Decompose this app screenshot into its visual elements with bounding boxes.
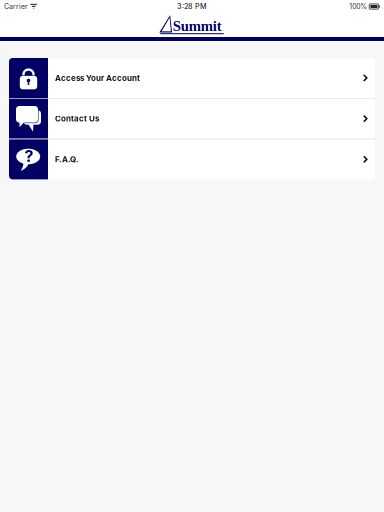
- staticText: Contact Us: [55, 114, 99, 124]
- staticText: F.A.Q.: [55, 155, 79, 164]
- staticText: Carrier: [4, 2, 28, 11]
- button[interactable]: Contact Us: [9, 99, 375, 139]
- staticText: 100%: [349, 2, 367, 11]
- staticText: ?: [24, 147, 33, 166]
- staticText: 3:28 PM: [177, 2, 207, 11]
- button[interactable]: ?: [9, 139, 375, 179]
- staticText: Summit: [173, 18, 222, 34]
- button[interactable]: Access Your Account: [9, 58, 375, 98]
- staticText: Access Your Account: [55, 73, 140, 83]
